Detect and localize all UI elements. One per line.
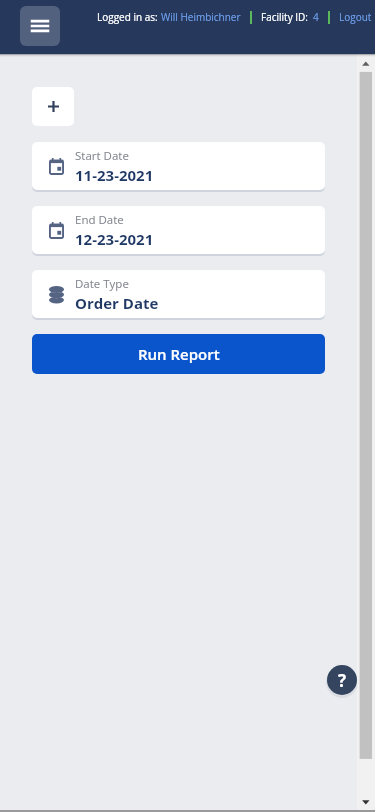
button[interactable]: End Date: [32, 206, 325, 254]
staticText: Facility ID:: [261, 10, 308, 24]
staticText: End Date: [75, 212, 124, 228]
button[interactable]: Help: [327, 665, 357, 695]
button[interactable]: Menu: [20, 6, 60, 46]
staticText: Order Date: [75, 293, 159, 313]
staticText: Start Date: [75, 148, 129, 164]
button[interactable]: Add: [32, 87, 74, 126]
button[interactable]: Will Heimbichner: [161, 10, 241, 24]
staticText: Run Report: [138, 344, 220, 364]
button[interactable]: Date Type: [32, 270, 325, 318]
staticText: Logged in as:: [97, 10, 161, 24]
staticText: 4: [313, 10, 319, 24]
staticText: 11-23-2021: [75, 165, 154, 185]
button[interactable]: Run Report: [32, 334, 325, 374]
staticText: 12-23-2021: [75, 229, 154, 249]
button[interactable]: Logout: [339, 10, 372, 24]
staticText: ?: [338, 669, 347, 692]
button[interactable]: Start Date: [32, 142, 325, 190]
staticText: Date Type: [75, 276, 129, 292]
